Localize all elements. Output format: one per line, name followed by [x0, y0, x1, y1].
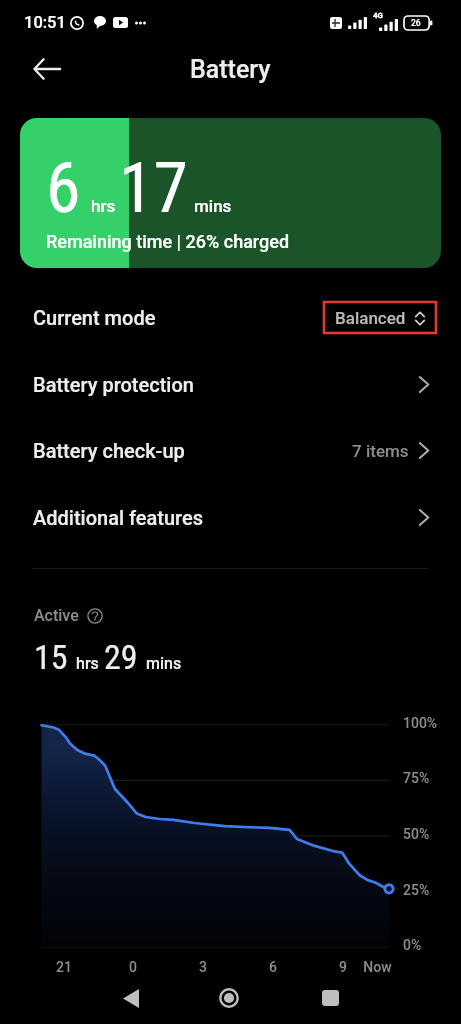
staticText: mins	[146, 654, 182, 673]
staticText: 3	[199, 959, 207, 975]
staticText: Active	[34, 606, 79, 625]
staticText: 6	[269, 959, 277, 975]
staticText: 0%	[403, 937, 422, 953]
staticText: 100%	[403, 715, 438, 731]
staticText: 75%	[403, 770, 430, 786]
button[interactable]: Back	[103, 976, 159, 1020]
staticText: Now	[363, 959, 392, 975]
button[interactable]: 6	[20, 118, 441, 268]
button[interactable]: Current mode	[0, 284, 461, 351]
button[interactable]: Battery check-up	[0, 417, 461, 484]
staticText: Battery protection	[33, 373, 194, 396]
button[interactable]: Additional features	[0, 484, 461, 551]
button[interactable]: Recents	[302, 976, 358, 1020]
staticText: 17	[119, 147, 189, 229]
staticText: 10:51	[24, 13, 66, 32]
staticText: 21	[56, 959, 72, 975]
staticText: 29	[104, 637, 138, 677]
staticText: 7 items	[352, 441, 409, 461]
staticText: 4G	[373, 11, 383, 20]
staticText: hrs	[91, 196, 116, 216]
staticText: 25%	[403, 882, 430, 898]
staticText: 50%	[403, 826, 430, 842]
staticText: Battery	[190, 55, 271, 84]
staticText: mins	[194, 196, 232, 216]
staticText: 9	[339, 959, 347, 975]
staticText: 0	[129, 959, 137, 975]
button[interactable]: Back	[26, 48, 68, 90]
button[interactable]: Home	[201, 976, 257, 1020]
staticText: 15	[34, 637, 68, 677]
button[interactable]: Battery protection	[0, 351, 461, 418]
staticText: Balanced	[335, 308, 406, 328]
staticText: Current mode	[33, 306, 156, 329]
staticText: hrs	[76, 654, 99, 673]
staticText: 6	[46, 147, 81, 229]
staticText: Battery check-up	[33, 439, 185, 462]
staticText: Remaining time | 26% charged	[46, 231, 290, 252]
staticText: Additional features	[33, 506, 203, 529]
staticText: 26	[411, 18, 421, 28]
